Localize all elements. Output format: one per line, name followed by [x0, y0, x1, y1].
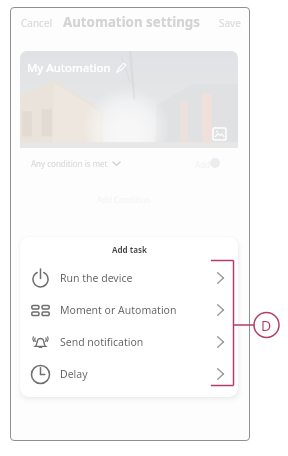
button[interactable]: Change cover image: [213, 128, 226, 140]
button[interactable]: Edit name: [115, 62, 127, 74]
staticText: Add: [195, 159, 210, 170]
staticText: D: [261, 316, 272, 335]
button[interactable]: Delay: [20, 358, 238, 390]
button[interactable]: Cancel: [17, 14, 57, 36]
staticText: Moment or Automation: [60, 303, 177, 317]
staticText: Add task: [112, 244, 147, 255]
staticText: Cancel: [21, 16, 53, 30]
staticText: Run the device: [60, 271, 133, 285]
button[interactable]: Send notification: [20, 326, 238, 358]
staticText: My Automation: [27, 60, 111, 75]
button[interactable]: Save: [215, 14, 245, 36]
staticText: Any condition is met: [31, 158, 108, 169]
staticText: Delay: [60, 367, 88, 381]
staticText: Automation settings: [63, 13, 200, 31]
button[interactable]: Run the device: [20, 262, 238, 294]
staticText: Send notification: [60, 335, 144, 349]
button[interactable]: Any condition is met: [29, 156, 123, 171]
button[interactable]: Moment or Automation: [20, 294, 238, 326]
button[interactable]: Add condition: [206, 154, 223, 171]
staticText: Save: [219, 16, 241, 30]
